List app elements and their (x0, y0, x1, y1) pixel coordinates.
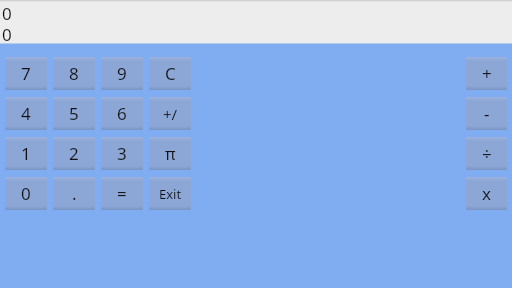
button[interactable]: 9 (101, 57, 143, 90)
button[interactable]: 0 (5, 177, 47, 210)
staticText: 2 (69, 142, 79, 165)
staticText: = (117, 182, 127, 205)
staticText: . (72, 182, 77, 205)
button[interactable]: π (149, 137, 191, 170)
button[interactable]: + (466, 57, 507, 90)
button[interactable]: . (53, 177, 95, 210)
staticText: 7 (21, 62, 31, 85)
staticText: x (482, 182, 491, 205)
staticText: 6 (117, 102, 127, 125)
staticText: 9 (117, 62, 127, 85)
button[interactable]: 6 (101, 97, 143, 130)
button[interactable]: ÷ (466, 137, 507, 170)
staticText: 3 (117, 142, 127, 165)
button[interactable]: 1 (5, 137, 47, 170)
staticText: π (165, 143, 176, 165)
button[interactable]: 4 (5, 97, 47, 130)
button[interactable]: 2 (53, 137, 95, 170)
button[interactable]: x (466, 177, 507, 210)
staticText: ÷ (482, 142, 492, 165)
button[interactable]: 5 (53, 97, 95, 130)
staticText: C (165, 62, 176, 85)
staticText: + (482, 62, 492, 85)
button[interactable]: - (466, 97, 507, 130)
staticText: - (484, 102, 490, 125)
staticText: 5 (69, 102, 79, 125)
staticText: 8 (69, 62, 79, 85)
staticText: 1 (21, 142, 31, 165)
button[interactable]: = (101, 177, 143, 210)
staticText: 0 (2, 2, 12, 23)
staticText: 4 (21, 102, 31, 125)
staticText: 0 (2, 23, 12, 43)
staticText: +/ (163, 104, 178, 124)
button[interactable]: 7 (5, 57, 47, 90)
button[interactable]: 3 (101, 137, 143, 170)
button[interactable]: +/ (149, 97, 191, 130)
button[interactable]: C (149, 57, 191, 90)
staticText: Exit (159, 185, 182, 203)
button[interactable]: 8 (53, 57, 95, 90)
staticText: 0 (21, 182, 31, 205)
button[interactable]: Exit (149, 177, 191, 210)
